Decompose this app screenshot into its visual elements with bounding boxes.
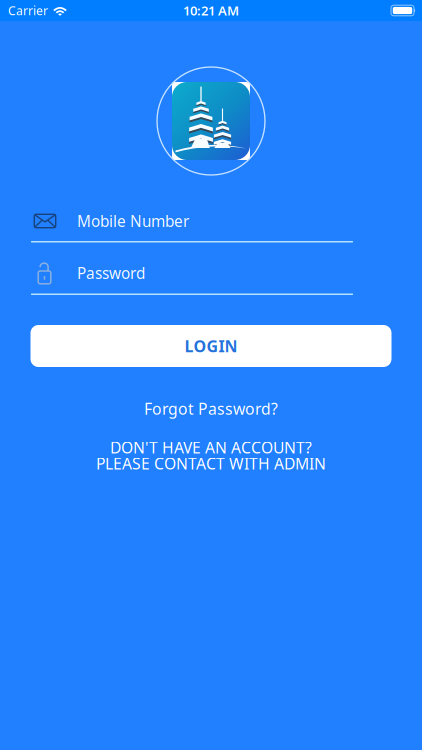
staticText: DON'T HAVE AN ACCOUNT? — [110, 437, 312, 458]
staticText: PLEASE CONTACT WITH ADMIN — [96, 453, 326, 474]
staticText: Carrier — [8, 2, 48, 19]
staticText: Forgot Password? — [144, 398, 278, 419]
staticText: Mobile Number — [77, 211, 189, 231]
staticText: Password — [77, 263, 145, 283]
staticText: 10:21 AM — [183, 2, 239, 19]
staticText: LOGIN — [184, 335, 237, 357]
button[interactable]: Forgot Password? — [144, 398, 278, 419]
button[interactable]: LOGIN — [30, 325, 391, 367]
